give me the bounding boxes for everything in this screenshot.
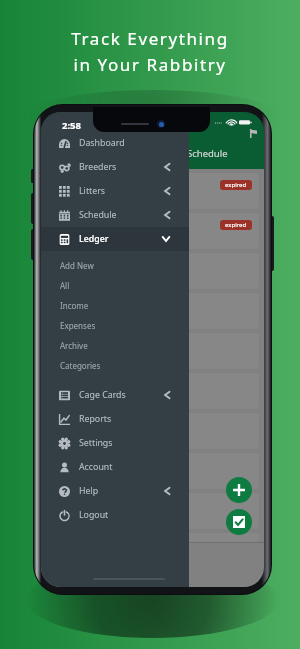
button[interactable]: Litters	[41, 179, 189, 203]
staticText: Cage Cards	[79, 389, 126, 401]
button[interactable]	[46, 253, 259, 289]
staticText: Logout	[79, 509, 109, 521]
button[interactable]: Ledger	[41, 227, 189, 251]
button[interactable]: Dashboard	[41, 131, 189, 155]
staticText: Expenses	[60, 320, 96, 331]
staticText: All	[60, 280, 70, 291]
staticText: expired	[225, 221, 247, 229]
staticText: Categories	[60, 360, 101, 371]
staticText: Ledger	[79, 233, 109, 245]
button[interactable]	[46, 373, 259, 409]
staticText: in Your Rabbitry	[73, 53, 227, 76]
button[interactable]: expired	[46, 213, 259, 249]
button[interactable]	[46, 333, 259, 369]
button[interactable]: Add New	[41, 255, 189, 275]
button[interactable]: Income	[41, 295, 189, 315]
button[interactable]: Flag	[244, 125, 261, 142]
button[interactable]: Cage Cards	[41, 383, 189, 407]
staticText: Schedule	[79, 209, 117, 221]
button[interactable]: Reports	[41, 407, 189, 431]
button[interactable]: expired	[46, 173, 259, 209]
button[interactable]	[46, 453, 259, 489]
button[interactable]: Account	[41, 455, 189, 479]
staticText: Reports	[79, 413, 112, 425]
staticText: Income	[60, 300, 89, 311]
button[interactable]	[46, 413, 259, 449]
staticText: Add New	[60, 260, 94, 271]
button[interactable]	[46, 493, 259, 529]
staticText: Help	[79, 485, 99, 497]
staticText: Settings	[79, 437, 113, 449]
staticText: Dashboard	[79, 137, 125, 149]
button[interactable]: All	[41, 275, 189, 295]
staticText: Archive	[60, 340, 88, 351]
button[interactable]	[46, 533, 259, 542]
button[interactable]: Breeders	[41, 155, 189, 179]
staticText: Breeders	[79, 161, 117, 173]
button[interactable]: Add	[226, 477, 252, 503]
staticText: expired	[225, 181, 247, 189]
staticText: Account	[79, 461, 113, 473]
staticText: Schedule	[187, 147, 228, 160]
button[interactable]: Settings	[41, 431, 189, 455]
button[interactable]: Help	[41, 479, 189, 503]
staticText: 2:58	[62, 119, 81, 132]
staticText: Track Everything	[71, 27, 229, 50]
staticText: Litters	[79, 185, 106, 197]
button[interactable]: Categories	[41, 355, 189, 375]
button[interactable]: Tasks	[226, 509, 252, 535]
button[interactable]	[46, 293, 259, 329]
button[interactable]: Schedule	[41, 203, 189, 227]
button[interactable]: Archive	[41, 335, 189, 355]
button[interactable]: Logout	[41, 503, 189, 527]
button[interactable]: Expenses	[41, 315, 189, 335]
